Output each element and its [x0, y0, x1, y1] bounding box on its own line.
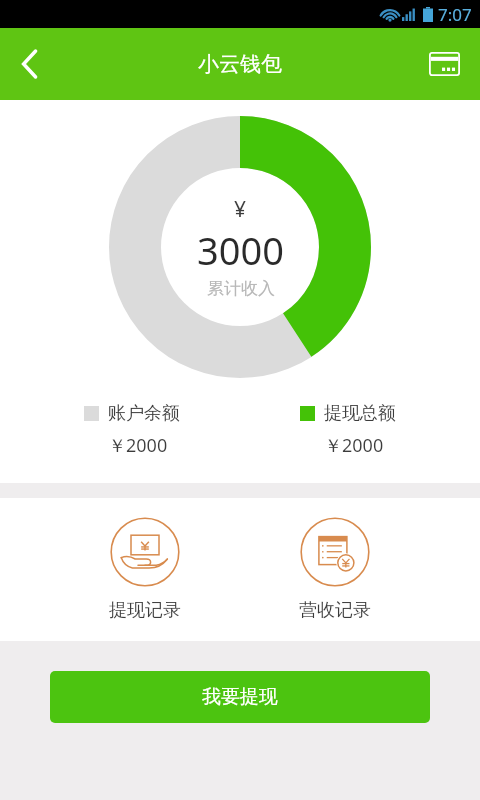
staticText: 小云钱包: [198, 51, 282, 77]
staticText: ¥: [234, 195, 247, 224]
staticText: 提现记录: [109, 599, 181, 622]
staticText: ￥2000: [324, 433, 384, 458]
button[interactable]: 营收记录: [291, 509, 379, 630]
button[interactable]: Back: [0, 34, 60, 94]
button[interactable]: 提现记录: [101, 509, 189, 630]
staticText: 累计收入: [207, 278, 275, 299]
staticText: 我要提现: [202, 685, 278, 709]
staticText: 7:07: [438, 3, 472, 26]
button[interactable]: Bank card: [422, 42, 466, 86]
staticText: 账户余额: [108, 402, 180, 425]
button[interactable]: 我要提现: [50, 671, 430, 723]
staticText: 提现总额: [324, 402, 396, 425]
staticText: 营收记录: [299, 599, 371, 622]
staticText: ￥2000: [108, 433, 168, 458]
staticText: 3000: [197, 224, 284, 276]
